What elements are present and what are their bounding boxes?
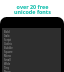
staticText: Tiny bbox=[4, 66, 10, 70]
button[interactable]: Italic bbox=[2, 34, 61, 38]
button[interactable]: Bubble bbox=[2, 46, 61, 50]
staticText: Italic bbox=[4, 34, 10, 38]
button[interactable]: Bold bbox=[2, 30, 61, 34]
button[interactable]: Small bbox=[2, 58, 61, 62]
button[interactable]: Neon bbox=[2, 70, 61, 72]
button[interactable]: Tiny bbox=[2, 66, 61, 70]
staticText: Small bbox=[4, 58, 11, 62]
button[interactable]: Script bbox=[2, 38, 61, 42]
staticText: Square bbox=[4, 50, 13, 54]
staticText: Gothic bbox=[4, 42, 12, 46]
button[interactable]: Mono bbox=[2, 54, 61, 58]
staticText: Bubble bbox=[4, 46, 13, 50]
button[interactable]: Gothic bbox=[2, 42, 61, 46]
staticText: over 20 free unicode fonts bbox=[14, 3, 51, 16]
button[interactable]: Square bbox=[2, 50, 61, 54]
staticText: Wide bbox=[4, 62, 11, 66]
staticText: Mono bbox=[4, 54, 12, 58]
staticText: Bold bbox=[4, 30, 10, 34]
button[interactable]: Wide bbox=[2, 62, 61, 66]
staticText: Neon bbox=[4, 70, 11, 72]
staticText: Script bbox=[4, 38, 11, 42]
